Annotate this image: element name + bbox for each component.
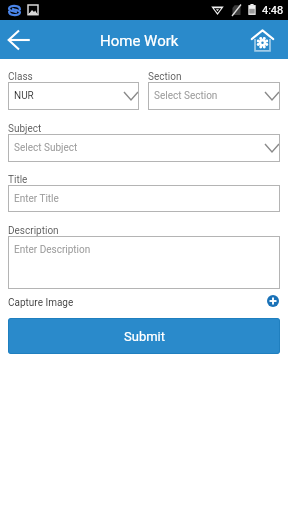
staticText: Enter Description [14, 244, 91, 256]
staticText: Section [148, 71, 182, 83]
button[interactable]: Enter Description [8, 236, 280, 289]
button[interactable]: Select Section [148, 82, 280, 110]
button[interactable]: Back [4, 25, 34, 55]
button[interactable]: NUR [8, 82, 139, 110]
button[interactable]: Submit [8, 318, 280, 354]
button[interactable]: Select Subject [8, 134, 280, 162]
staticText: Description [8, 225, 59, 237]
staticText: Home Work [100, 32, 179, 50]
button[interactable]: Capture Image [264, 292, 282, 310]
staticText: Subject [8, 123, 42, 135]
staticText: 4:48 [262, 4, 284, 17]
staticText: Select Section [154, 90, 218, 102]
button[interactable]: Settings [247, 25, 277, 55]
staticText: Capture Image [8, 297, 74, 309]
staticText: Select Subject [14, 142, 78, 154]
staticText: NUR [14, 90, 34, 102]
staticText: Title [8, 174, 28, 186]
staticText: Enter Title [14, 193, 59, 205]
staticText: Class [8, 71, 33, 83]
button[interactable]: Enter Title [8, 185, 280, 212]
staticText: Submit [124, 329, 165, 344]
